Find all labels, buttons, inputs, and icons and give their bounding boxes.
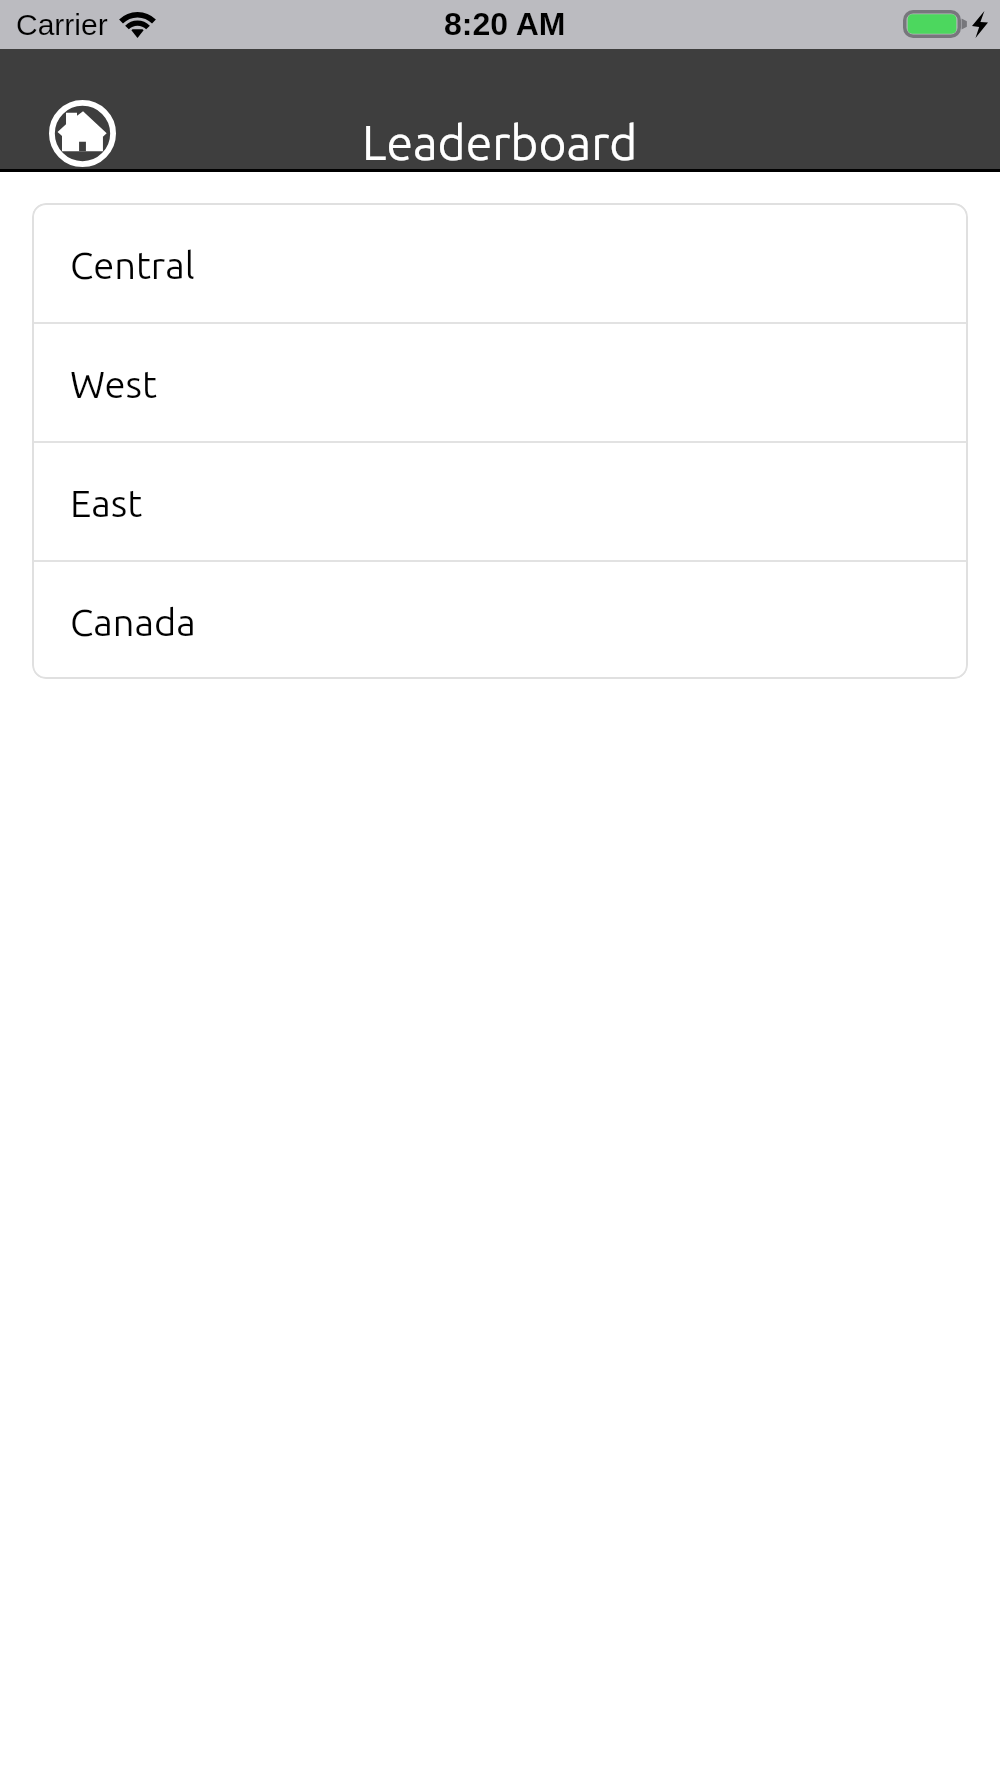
staticText: Leaderboard [362, 115, 638, 169]
staticText: 8:20 AM [444, 6, 566, 42]
button[interactable]: West [32, 322, 968, 441]
button[interactable]: East [32, 441, 968, 560]
button[interactable]: Central [32, 203, 968, 322]
staticText: East [70, 482, 143, 525]
button[interactable]: Home [49, 100, 116, 167]
staticText: West [70, 363, 157, 406]
staticText: Canada [70, 601, 196, 644]
staticText: Central [70, 244, 195, 287]
staticText: Carrier [16, 8, 108, 42]
button[interactable]: Canada [32, 560, 968, 679]
